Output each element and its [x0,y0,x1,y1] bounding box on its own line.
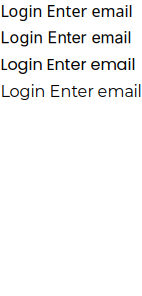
staticText: Login Enter email [0,82,141,101]
staticText: Login Enter email [0,28,131,47]
staticText: Login Enter email [0,53,135,76]
staticText: Login Enter email [0,0,132,22]
